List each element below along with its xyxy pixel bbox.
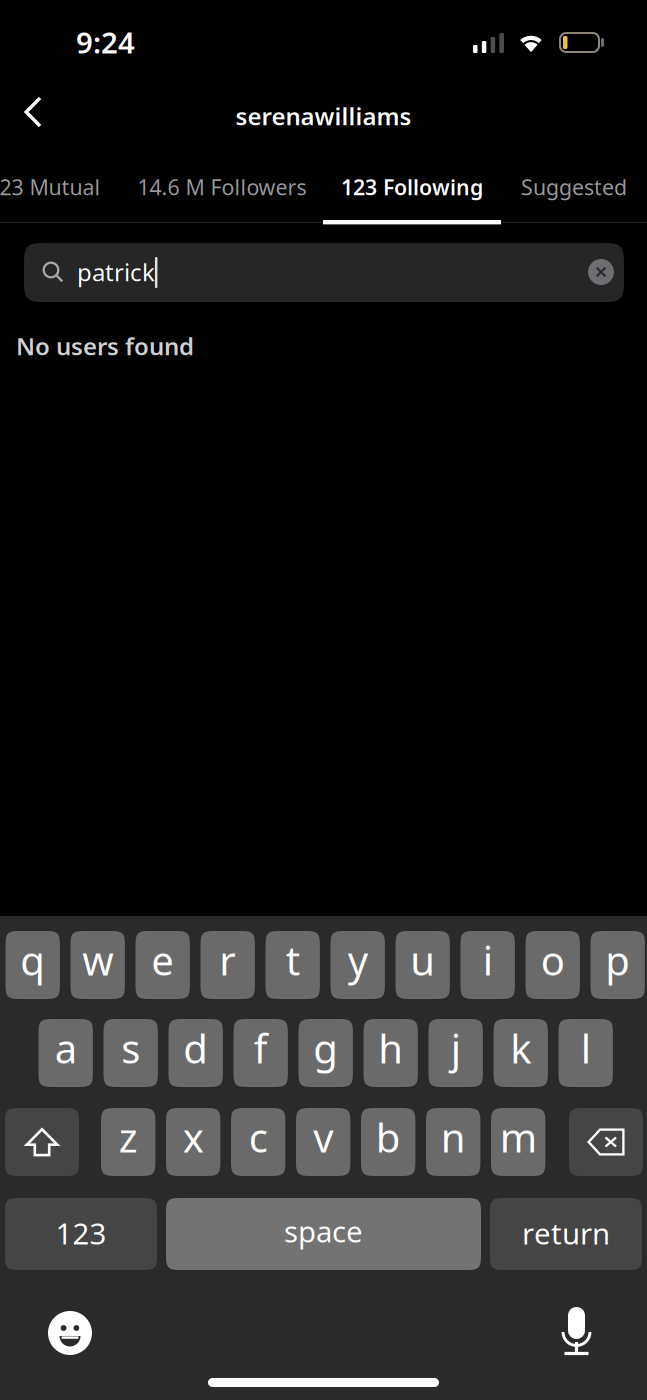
button[interactable]: Emoji keyboard	[48, 1311, 92, 1355]
staticText: j	[451, 1021, 461, 1074]
staticText: t	[286, 933, 300, 986]
staticText: o	[541, 933, 565, 986]
button[interactable]: t	[265, 931, 320, 999]
button[interactable]: i	[460, 931, 515, 999]
staticText: z	[119, 1110, 138, 1163]
staticText: serenawilliams	[235, 100, 411, 132]
button[interactable]: v	[296, 1108, 350, 1176]
button[interactable]: g	[298, 1019, 353, 1087]
staticText: b	[376, 1110, 401, 1163]
staticText: i	[483, 933, 493, 986]
staticText: 123	[55, 1213, 106, 1252]
button[interactable]: s	[103, 1019, 158, 1087]
staticText: space	[284, 1211, 363, 1250]
button[interactable]: return	[490, 1198, 642, 1270]
button[interactable]: k	[493, 1019, 548, 1087]
button[interactable]: u	[395, 931, 450, 999]
button[interactable]: r	[200, 931, 255, 999]
button[interactable]: space	[166, 1198, 481, 1270]
staticText: return	[522, 1213, 610, 1252]
button[interactable]: l	[558, 1019, 613, 1087]
button[interactable]: m	[491, 1108, 545, 1176]
button[interactable]: Back	[8, 90, 58, 134]
staticText: c	[249, 1110, 268, 1163]
button[interactable]: 123 Following	[323, 172, 501, 224]
staticText: 123 Following	[341, 173, 483, 201]
staticText: d	[183, 1021, 208, 1074]
staticText: p	[605, 933, 630, 986]
staticText: k	[510, 1021, 531, 1074]
staticText: e	[151, 933, 174, 986]
button[interactable]: b	[361, 1108, 415, 1176]
button[interactable]: Delete	[569, 1108, 643, 1176]
button[interactable]: 123	[5, 1198, 157, 1270]
staticText: No users found	[16, 330, 194, 362]
staticText: v	[313, 1110, 333, 1163]
button[interactable]: z	[101, 1108, 155, 1176]
staticText: u	[410, 933, 435, 986]
staticText: x	[183, 1110, 204, 1163]
button[interactable]: n	[426, 1108, 480, 1176]
button[interactable]: Dictation	[557, 1307, 596, 1356]
staticText: l	[581, 1021, 591, 1074]
staticText: w	[82, 933, 113, 986]
staticText: r	[219, 933, 236, 986]
button[interactable]: e	[135, 931, 190, 999]
staticText: 14.6 M Followers	[137, 173, 306, 201]
button[interactable]: h	[363, 1019, 418, 1087]
staticText: f	[254, 1021, 268, 1074]
button[interactable]: y	[330, 931, 385, 999]
button[interactable]: Shift	[5, 1108, 79, 1176]
button[interactable]: w	[70, 931, 125, 999]
button[interactable]: Clear text	[588, 259, 614, 285]
button[interactable]: c	[231, 1108, 285, 1176]
button[interactable]: x	[166, 1108, 220, 1176]
staticText: a	[55, 1021, 77, 1074]
button[interactable]: p	[590, 931, 645, 999]
staticText: g	[313, 1021, 338, 1074]
staticText: m	[500, 1110, 537, 1163]
button[interactable]: Suggested	[499, 172, 647, 202]
staticText: Suggested	[521, 173, 627, 201]
staticText: patrick	[77, 256, 155, 288]
staticText: y	[348, 933, 368, 986]
staticText: 23 Mutual	[0, 173, 100, 201]
button[interactable]: q	[5, 931, 60, 999]
button[interactable]: 23 Mutual	[0, 172, 120, 202]
button[interactable]: 14.6 M Followers	[127, 172, 317, 202]
staticText: 9:24	[76, 22, 135, 61]
button[interactable]: j	[428, 1019, 483, 1087]
button[interactable]: a	[38, 1019, 93, 1087]
button[interactable]: f	[233, 1019, 288, 1087]
staticText: n	[441, 1110, 466, 1163]
button[interactable]: d	[168, 1019, 223, 1087]
button[interactable]: o	[525, 931, 580, 999]
staticText: h	[378, 1021, 403, 1074]
staticText: s	[121, 1021, 140, 1074]
staticText: q	[20, 933, 45, 986]
